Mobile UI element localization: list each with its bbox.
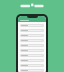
- other: Bulk SMS logo: [20, 3, 44, 9]
- button[interactable]: Select item 3: [20, 34, 44, 37]
- other: Select item 8: [41, 60, 43, 62]
- button[interactable]: Select item 2: [20, 29, 44, 32]
- button[interactable]: Select item 9: [20, 64, 44, 67]
- button[interactable]: Select item 8: [20, 59, 44, 62]
- button[interactable]: Select item 5: [20, 44, 44, 47]
- other: Select item 7: [41, 55, 43, 57]
- other: Select item 4: [41, 40, 43, 42]
- other: Select item 5: [41, 45, 43, 47]
- other: Select item 9: [41, 65, 43, 67]
- other: Select item 3: [41, 35, 43, 37]
- button[interactable]: Select item 7: [20, 54, 44, 57]
- button[interactable]: [18, 16, 46, 22]
- other: Select item 10: [41, 70, 43, 72]
- other: Select item 2: [41, 30, 43, 32]
- other: Select item 6: [41, 50, 43, 52]
- button[interactable]: Select item 6: [20, 49, 44, 52]
- other: Select item 1: [41, 25, 43, 27]
- button[interactable]: Select item 10: [20, 69, 44, 72]
- button[interactable]: Select item 4: [20, 39, 44, 42]
- button[interactable]: Select item 1: [20, 24, 44, 27]
